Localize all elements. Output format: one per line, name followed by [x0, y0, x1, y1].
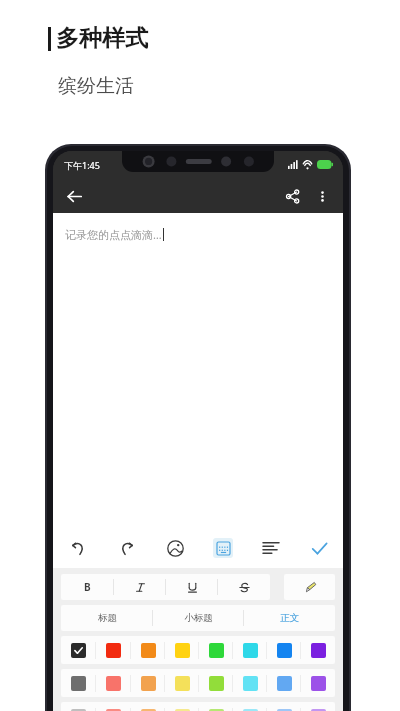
button[interactable]: Share: [277, 181, 307, 211]
button[interactable]: Color 7: [267, 669, 301, 697]
staticText: 缤纷生活: [58, 74, 134, 98]
button[interactable]: Color 6: [233, 702, 267, 711]
button[interactable]: Color 8: [301, 702, 335, 711]
button[interactable]: Back: [59, 181, 89, 211]
button[interactable]: Undo: [53, 528, 102, 568]
button[interactable]: Color 8: [301, 636, 335, 664]
button[interactable]: Color 7: [267, 636, 301, 664]
button[interactable]: [218, 574, 270, 600]
button[interactable]: Color 5: [199, 669, 233, 697]
staticText: B: [84, 580, 91, 594]
button[interactable]: 正文: [244, 605, 335, 631]
button[interactable]: Color 3: [131, 669, 165, 697]
button[interactable]: B: [61, 574, 114, 600]
button[interactable]: 小标题: [153, 605, 244, 631]
button[interactable]: Redo: [102, 528, 151, 568]
staticText: 标题: [98, 612, 117, 624]
button[interactable]: Color 6: [233, 669, 267, 697]
button[interactable]: Color 2: [96, 702, 131, 711]
button[interactable]: Insert image: [151, 528, 199, 568]
staticText: 小标题: [184, 612, 213, 624]
button[interactable]: Color 2: [96, 669, 131, 697]
button[interactable]: Color 3: [131, 636, 165, 664]
button[interactable]: 标题: [61, 605, 153, 631]
button[interactable]: Color 3: [131, 702, 165, 711]
button[interactable]: Done: [295, 528, 343, 568]
staticText: 正文: [280, 612, 299, 624]
button[interactable]: Align: [247, 528, 295, 568]
staticText: 多种样式: [56, 24, 148, 53]
button[interactable]: Color 8: [301, 669, 335, 697]
button[interactable]: Color 1: [61, 636, 96, 664]
button[interactable]: [166, 574, 218, 600]
staticText: 记录您的点点滴滴…: [65, 227, 162, 242]
button[interactable]: Color 4: [165, 702, 199, 711]
button[interactable]: More options: [307, 181, 337, 211]
button[interactable]: Highlight: [284, 574, 335, 600]
button[interactable]: Color 2: [96, 636, 131, 664]
button[interactable]: Color 1: [61, 669, 96, 697]
button[interactable]: [114, 574, 166, 600]
button[interactable]: Color 4: [165, 669, 199, 697]
button[interactable]: Color 1: [61, 702, 96, 711]
button[interactable]: Color 6: [233, 636, 267, 664]
staticText: 下午1:45: [64, 159, 100, 171]
button[interactable]: Color 5: [199, 636, 233, 664]
button[interactable]: Color 7: [267, 702, 301, 711]
button[interactable]: Keyboard: [199, 528, 247, 568]
button[interactable]: Color 5: [199, 702, 233, 711]
button[interactable]: Color 4: [165, 636, 199, 664]
